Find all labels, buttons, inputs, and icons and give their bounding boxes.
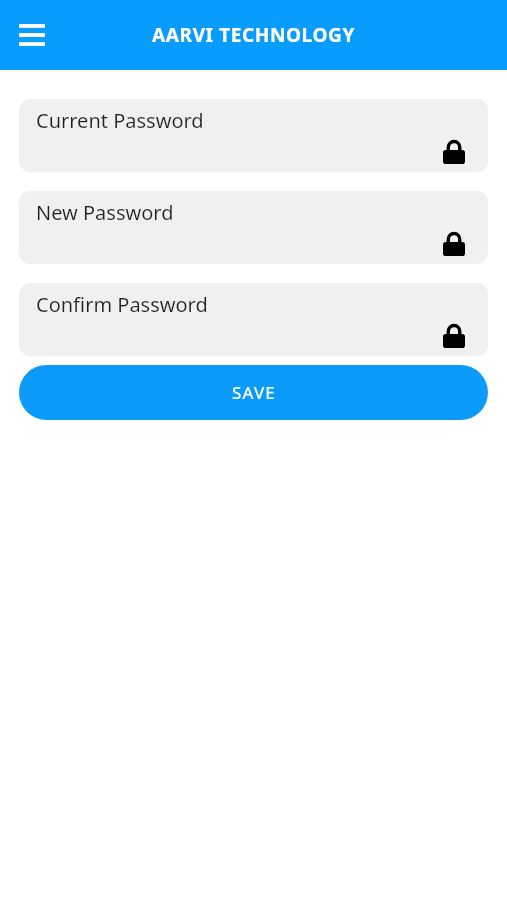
staticText: Current Password <box>36 107 204 134</box>
button[interactable]: New Password <box>19 191 488 264</box>
staticText: AARVI TECHNOLOGY <box>152 22 355 48</box>
other: Password hidden <box>442 140 466 164</box>
other: Password hidden <box>442 324 466 348</box>
other: Password hidden <box>442 232 466 256</box>
staticText: SAVE <box>232 381 276 404</box>
button[interactable]: Current Password <box>19 99 488 172</box>
staticText: Confirm Password <box>36 291 208 318</box>
staticText: New Password <box>36 199 174 226</box>
button[interactable]: Confirm Password <box>19 283 488 356</box>
button[interactable]: Open navigation menu <box>11 14 53 56</box>
button[interactable]: SAVE <box>19 365 488 420</box>
